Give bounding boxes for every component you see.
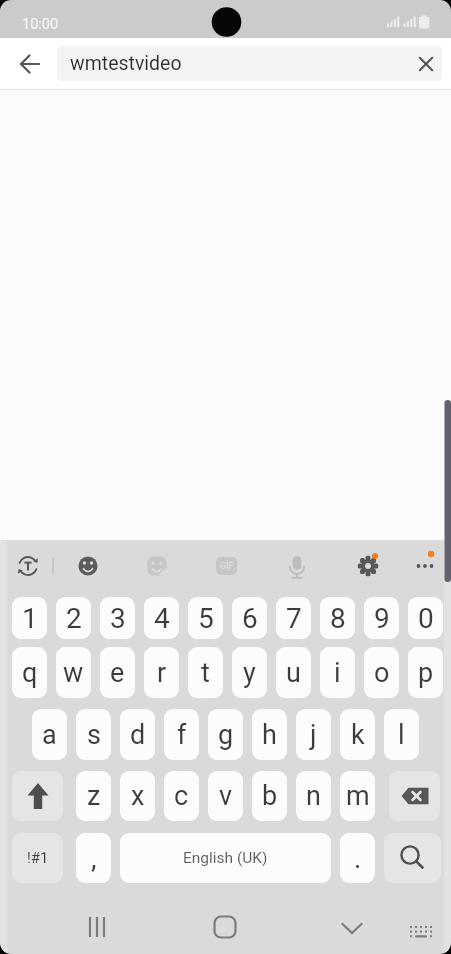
button[interactable]: [384, 833, 441, 883]
button[interactable]: [68, 546, 108, 586]
staticText: j: [310, 719, 317, 751]
button[interactable]: v: [208, 771, 243, 821]
staticText: u: [286, 657, 301, 689]
button[interactable]: 6: [232, 597, 267, 639]
button[interactable]: 1: [12, 597, 47, 639]
staticText: wmtestvideo: [70, 52, 182, 75]
staticText: k: [351, 719, 365, 751]
button[interactable]: [12, 771, 63, 821]
button[interactable]: 0: [408, 597, 443, 639]
button[interactable]: m: [340, 771, 375, 821]
button[interactable]: [405, 546, 445, 586]
button[interactable]: i: [320, 647, 355, 698]
staticText: p: [418, 657, 434, 689]
staticText: x: [131, 780, 145, 812]
button[interactable]: y: [232, 647, 267, 698]
button[interactable]: d: [120, 709, 155, 760]
staticText: 1: [22, 602, 38, 635]
staticText: f: [177, 719, 187, 751]
button[interactable]: j: [296, 709, 331, 760]
staticText: 10:00: [22, 16, 59, 33]
button[interactable]: 2: [56, 597, 91, 639]
button[interactable]: !#1: [12, 833, 63, 883]
button[interactable]: 8: [320, 597, 355, 639]
staticText: w: [63, 657, 84, 689]
staticText: 9: [374, 602, 390, 635]
staticText: d: [130, 719, 146, 751]
button[interactable]: 5: [188, 597, 223, 639]
button[interactable]: u: [276, 647, 311, 698]
button[interactable]: ,: [76, 833, 111, 883]
button[interactable]: [389, 771, 440, 821]
button[interactable]: f: [164, 709, 199, 760]
staticText: 7: [286, 602, 302, 635]
button[interactable]: [330, 907, 374, 947]
button[interactable]: .: [340, 833, 375, 883]
button[interactable]: [277, 546, 317, 586]
button[interactable]: [137, 546, 177, 586]
staticText: z: [87, 780, 101, 812]
staticText: m: [346, 780, 370, 812]
button[interactable]: c: [164, 771, 199, 821]
staticText: v: [219, 780, 233, 812]
staticText: 6: [242, 602, 258, 635]
staticText: l: [398, 719, 405, 751]
button[interactable]: r: [144, 647, 179, 698]
button[interactable]: q: [12, 647, 47, 698]
staticText: o: [374, 657, 390, 689]
staticText: 8: [330, 602, 346, 635]
button[interactable]: n: [296, 771, 331, 821]
button[interactable]: [203, 907, 247, 947]
staticText: s: [87, 719, 101, 751]
button[interactable]: 7: [276, 597, 311, 639]
staticText: 0: [418, 602, 434, 635]
staticText: r: [157, 657, 167, 689]
staticText: b: [262, 780, 278, 812]
staticText: c: [174, 780, 189, 812]
staticText: e: [110, 657, 125, 689]
button[interactable]: z: [76, 771, 111, 821]
staticText: y: [243, 657, 256, 689]
staticText: i: [334, 657, 341, 689]
button[interactable]: 4: [144, 597, 179, 639]
staticText: 3: [110, 602, 126, 635]
button[interactable]: [412, 50, 440, 78]
button[interactable]: [399, 907, 443, 947]
button[interactable]: a: [32, 709, 67, 760]
staticText: t: [201, 657, 210, 689]
staticText: g: [218, 719, 234, 751]
staticText: GIF: [220, 561, 234, 572]
button[interactable]: b: [252, 771, 287, 821]
button[interactable]: wmtestvideo: [57, 46, 442, 81]
staticText: English (UK): [183, 849, 268, 867]
button[interactable]: x: [120, 771, 155, 821]
button[interactable]: [348, 546, 388, 586]
button[interactable]: k: [340, 709, 375, 760]
button[interactable]: 3: [100, 597, 135, 639]
button[interactable]: English (UK): [120, 833, 331, 883]
staticText: h: [262, 719, 277, 751]
staticText: !#1: [27, 849, 49, 867]
staticText: q: [22, 657, 38, 689]
button[interactable]: o: [364, 647, 399, 698]
staticText: 2: [66, 602, 82, 635]
button[interactable]: w: [56, 647, 91, 698]
staticText: ,: [91, 842, 97, 875]
button[interactable]: t: [188, 647, 223, 698]
button[interactable]: [8, 546, 48, 586]
button[interactable]: GIF: [216, 557, 237, 575]
staticText: 5: [198, 602, 214, 635]
button[interactable]: g: [208, 709, 243, 760]
button[interactable]: [12, 46, 48, 82]
button[interactable]: 9: [364, 597, 399, 639]
staticText: n: [306, 780, 321, 812]
staticText: a: [42, 719, 57, 751]
button[interactable]: [75, 907, 119, 947]
button[interactable]: s: [76, 709, 111, 760]
staticText: .: [354, 842, 362, 875]
button[interactable]: l: [384, 709, 419, 760]
button[interactable]: e: [100, 647, 135, 698]
button[interactable]: h: [252, 709, 287, 760]
staticText: 4: [154, 602, 170, 635]
button[interactable]: p: [408, 647, 443, 698]
